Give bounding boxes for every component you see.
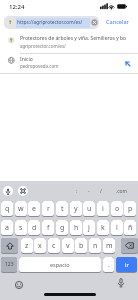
button[interactable] (18, 186, 28, 196)
staticText: l (116, 223, 118, 233)
staticText: r (47, 204, 50, 214)
staticText: - (88, 188, 90, 195)
button[interactable] (121, 238, 138, 254)
staticText: : (76, 188, 78, 195)
staticText: espacio (50, 261, 70, 268)
staticText: g (60, 223, 65, 233)
button[interactable]: m (103, 238, 115, 254)
button[interactable]: b (75, 238, 87, 254)
staticText: p (128, 204, 133, 214)
staticText: w (18, 204, 24, 214)
button[interactable]: y (70, 201, 82, 217)
button[interactable]: h (70, 220, 82, 236)
button[interactable] (0, 53, 138, 74)
button[interactable]: z (21, 238, 33, 254)
staticText: m (106, 241, 113, 251)
button[interactable]: . (103, 257, 114, 273)
button[interactable]: ñ (124, 220, 136, 236)
button[interactable]: r (42, 201, 54, 217)
staticText: f (47, 223, 50, 233)
button[interactable]: d (28, 220, 40, 236)
button[interactable]: Cancelar (101, 16, 133, 28)
button[interactable]: : (72, 184, 82, 198)
button[interactable] (3, 186, 13, 196)
button[interactable]: k (97, 220, 109, 236)
staticText: q (5, 204, 10, 214)
button[interactable]: o (111, 201, 123, 217)
button[interactable] (1, 238, 18, 254)
staticText: c (52, 241, 56, 251)
staticText: b (79, 241, 84, 251)
button[interactable] (4, 16, 99, 29)
button[interactable]: a (1, 220, 13, 236)
staticText: v (66, 241, 70, 251)
staticText: Protectores de árboles y viña. Semillero… (20, 35, 138, 42)
staticText: Cancelar (106, 18, 129, 26)
staticText: d (32, 223, 37, 233)
button[interactable] (117, 278, 124, 288)
button[interactable] (15, 281, 23, 289)
staticText: o (115, 204, 120, 214)
button[interactable]: v (62, 238, 74, 254)
button[interactable]: x (34, 238, 46, 254)
button[interactable]: / (96, 184, 106, 198)
staticText: s (19, 223, 23, 233)
staticText: n (93, 241, 98, 251)
button[interactable]: p (124, 201, 136, 217)
staticText: y (74, 204, 78, 214)
staticText: / (100, 188, 102, 195)
staticText: j (88, 223, 90, 233)
button[interactable]: g (56, 220, 68, 236)
staticText: pedropoveda.com (20, 63, 59, 69)
button[interactable]: f (42, 220, 54, 236)
staticText: ir (125, 261, 129, 268)
staticText: . (108, 260, 110, 270)
staticText: e (32, 204, 36, 214)
staticText: t (61, 204, 64, 214)
staticText: https://agriprotector.com/es/ (17, 19, 89, 26)
button[interactable]: ir (116, 257, 137, 273)
staticText: k (101, 223, 105, 233)
button[interactable]: c (48, 238, 60, 254)
button[interactable]: n (89, 238, 101, 254)
button[interactable]: 123 (1, 257, 17, 273)
button[interactable]: espacio (19, 257, 101, 273)
button[interactable]: w (15, 201, 27, 217)
button[interactable] (0, 32, 138, 53)
staticText: ñ (128, 223, 133, 233)
staticText: z (25, 241, 29, 251)
button[interactable]: t (56, 201, 68, 217)
button[interactable]: s (15, 220, 27, 236)
button[interactable]: j (83, 220, 95, 236)
button[interactable]: u (83, 201, 95, 217)
button[interactable]: l (111, 220, 123, 236)
staticText: a (5, 223, 9, 233)
staticText: h (74, 223, 79, 233)
staticText: agriprotector.com/es/ (20, 43, 66, 49)
staticText: x (38, 241, 42, 251)
staticText: .com (116, 188, 127, 195)
button[interactable]: e (28, 201, 40, 217)
staticText: i (102, 204, 104, 214)
staticText: u (87, 204, 92, 214)
staticText: 123 (5, 261, 14, 268)
button[interactable]: i (97, 201, 109, 217)
staticText: Inicio (20, 56, 33, 63)
button[interactable]: .com (109, 184, 133, 198)
staticText: 12:24 (9, 3, 25, 11)
button[interactable]: - (84, 184, 94, 198)
button[interactable] (91, 19, 98, 26)
button[interactable]: q (1, 201, 13, 217)
